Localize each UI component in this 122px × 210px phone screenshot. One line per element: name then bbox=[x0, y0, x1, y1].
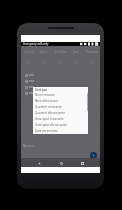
staticText: James bbox=[40, 50, 48, 54]
staticText: Nom croissant bbox=[35, 93, 55, 97]
button[interactable]: Paramètr bbox=[84, 46, 100, 57]
button[interactable]: James bbox=[36, 46, 52, 57]
button[interactable]: Back bbox=[35, 159, 43, 167]
staticText: Paramètr bbox=[86, 50, 99, 54]
button[interactable]: Recents bbox=[78, 159, 86, 167]
staticText: Jean bbox=[73, 50, 79, 54]
button[interactable]: Quantité décroissante bbox=[33, 110, 88, 116]
button[interactable]: Home bbox=[57, 159, 65, 167]
staticText: Sort par bbox=[35, 88, 48, 92]
button[interactable]: Consult bbox=[21, 46, 36, 57]
staticText: Emergency calls only bbox=[23, 42, 49, 46]
button[interactable]: Installer bbox=[52, 46, 68, 57]
button[interactable]: Date ajout décroissante bbox=[33, 122, 88, 128]
staticText: Date ajout croissante bbox=[35, 117, 64, 121]
button[interactable]: Quantité croissante bbox=[33, 104, 88, 110]
button[interactable]: Nom décroissant bbox=[33, 98, 88, 104]
button[interactable]: Date ajout croissante bbox=[33, 116, 88, 122]
button[interactable]: Jean bbox=[68, 46, 84, 57]
staticText: Nouveau bbox=[23, 144, 35, 148]
button[interactable]: Date péremption bbox=[33, 128, 88, 134]
staticText: Quantité décroissante bbox=[35, 111, 65, 115]
staticText: Consult bbox=[24, 50, 34, 54]
staticText: Date ajout décroissante bbox=[35, 123, 68, 127]
staticText: Quantité croissante bbox=[35, 105, 62, 109]
staticText: Date péremption bbox=[35, 129, 59, 133]
staticText: Nom décroissant bbox=[35, 99, 59, 103]
button[interactable]: Add bbox=[90, 152, 97, 159]
button[interactable]: Nom croissant bbox=[33, 92, 88, 98]
staticText: Installer bbox=[55, 50, 66, 54]
